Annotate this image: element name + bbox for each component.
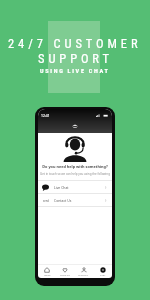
- staticText: Live Chat: [54, 185, 69, 190]
- staticText: send: [43, 199, 49, 203]
- staticText: SUPPORT: [38, 51, 113, 66]
- button[interactable]: ACCOUNT: [74, 267, 93, 277]
- button[interactable]: Live Chat: [38, 181, 112, 193]
- staticText: USING LIVE CHAT: [40, 67, 110, 74]
- button[interactable]: CART: [93, 267, 112, 277]
- staticText: CART: [100, 274, 106, 277]
- staticText: 24/7 CUSTOMER: [8, 36, 142, 51]
- button[interactable]: WISHLIST: [56, 267, 74, 277]
- staticText: WISHLIST: [60, 274, 70, 277]
- staticText: Get in touch so we can help you using th…: [38, 172, 112, 176]
- staticText: Contact Us: [54, 198, 72, 203]
- button[interactable]: send: [38, 194, 112, 206]
- staticText: ACCOUNT: [78, 274, 89, 277]
- staticText: Do you need help with something?: [38, 164, 112, 169]
- button[interactable]: HOME: [38, 267, 56, 277]
- staticText: HOME: [44, 274, 51, 277]
- staticText: 12:41: [41, 113, 50, 118]
